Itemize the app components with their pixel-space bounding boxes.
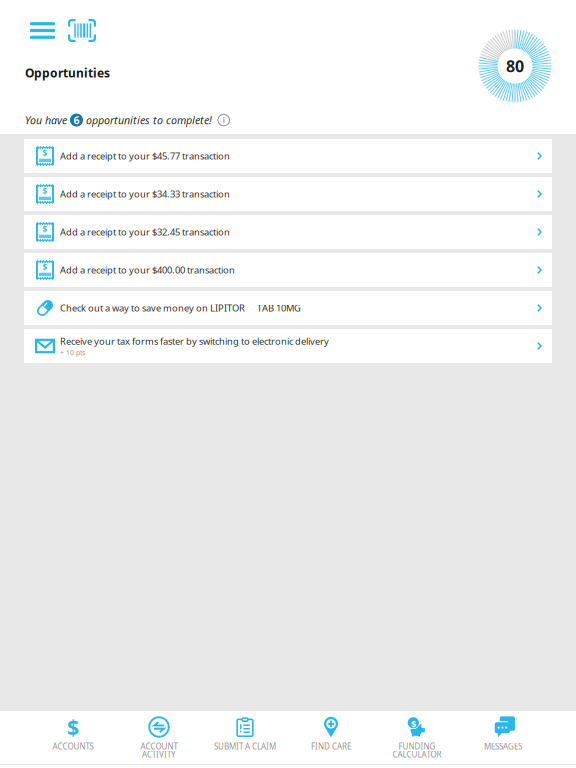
button[interactable]: $ xyxy=(24,177,552,211)
staticText: Add a receipt to your $34.33 transaction xyxy=(60,188,230,200)
staticText: Opportunities xyxy=(25,65,110,81)
button[interactable]: $ xyxy=(24,253,552,287)
staticText: Add a receipt to your $400.00 transactio… xyxy=(60,264,235,276)
staticText: TAB 10MG xyxy=(245,302,301,314)
staticText: 6 xyxy=(73,113,79,127)
button[interactable]: MESSAGES xyxy=(460,711,546,764)
staticText: ACTIVITY xyxy=(142,749,176,760)
staticText: $ xyxy=(42,186,47,197)
button[interactable]: $ xyxy=(24,139,552,173)
staticText: 80 xyxy=(506,55,524,77)
staticText: Receive your tax forms faster by switchi… xyxy=(60,335,329,347)
staticText: MESSAGES xyxy=(484,741,522,752)
staticText: CALCULATOR xyxy=(392,749,441,760)
button[interactable]: Scan barcode xyxy=(68,19,96,42)
staticText: ACCOUNT xyxy=(140,741,177,752)
staticText: FUNDING xyxy=(398,741,435,752)
staticText: ACCOUNTS xyxy=(52,741,93,752)
button[interactable]: Receive your tax forms faster by switchi… xyxy=(24,329,552,363)
staticText: Add a receipt to your $32.45 transaction xyxy=(60,226,230,238)
staticText: + 10 pts xyxy=(60,348,85,357)
button[interactable]: Check out a way to save money on LIPITOR xyxy=(24,291,552,325)
button[interactable]: SUBMIT A CLAIM xyxy=(202,711,288,764)
staticText: You have xyxy=(25,113,70,127)
button[interactable]: Information xyxy=(212,114,229,126)
staticText: $ xyxy=(411,718,416,730)
staticText: $ xyxy=(42,262,47,273)
staticText: $ xyxy=(42,224,47,235)
button[interactable]: $ xyxy=(374,711,460,764)
staticText: SUBMIT A CLAIM xyxy=(214,741,276,752)
staticText: opportunities to complete! xyxy=(83,113,212,127)
button[interactable]: ACCOUNT xyxy=(116,711,202,764)
staticText: $ xyxy=(42,148,47,159)
button[interactable]: $ xyxy=(24,215,552,249)
button[interactable]: Menu xyxy=(30,22,55,38)
staticText: Add a receipt to your $45.77 transaction xyxy=(60,150,230,162)
button[interactable]: FIND CARE xyxy=(288,711,374,764)
staticText: $ xyxy=(67,713,79,741)
staticText: Check out a way to save money on LIPITOR xyxy=(60,302,245,314)
button[interactable]: $ xyxy=(30,711,116,764)
staticText: FIND CARE xyxy=(311,741,351,752)
